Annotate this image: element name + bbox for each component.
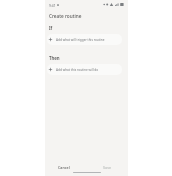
staticText: Add what will trigger this routine [56, 38, 105, 42]
staticText: Then [49, 55, 60, 61]
staticText: Create routine [49, 13, 82, 19]
staticText: If [49, 25, 53, 31]
button[interactable]: Save [96, 162, 122, 173]
staticText: Cancel [58, 165, 70, 170]
button[interactable]: Cancel [51, 162, 77, 173]
button[interactable]: Add what this routine will do [47, 64, 122, 75]
button[interactable]: Add what will trigger this routine [47, 34, 122, 45]
staticText: Add what this routine will do [56, 68, 99, 72]
staticText: 9:41 [49, 3, 56, 7]
staticText: Save [103, 165, 112, 170]
